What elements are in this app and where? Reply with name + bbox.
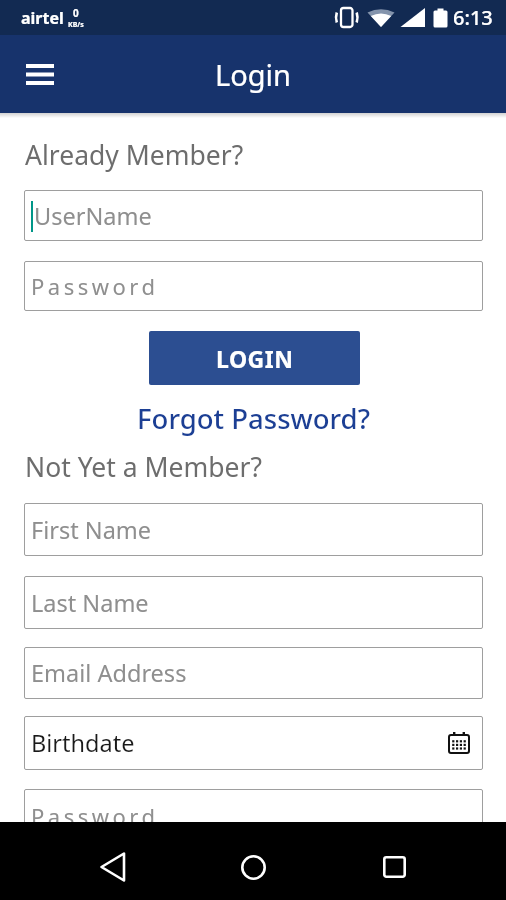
button[interactable]: Email Address xyxy=(24,647,483,699)
staticText: Password xyxy=(31,271,159,301)
staticText: Password xyxy=(31,801,159,822)
staticText: First Name xyxy=(31,514,152,546)
staticText: Not Yet a Member? xyxy=(25,449,262,485)
button[interactable] xyxy=(369,842,419,892)
button[interactable]: Birthdate xyxy=(24,716,483,770)
staticText: Last Name xyxy=(31,587,149,619)
staticText: Email Address xyxy=(31,657,187,689)
staticText: Login xyxy=(215,55,291,94)
button[interactable]: First Name xyxy=(24,503,483,556)
button[interactable]: Password xyxy=(24,789,483,822)
button[interactable] xyxy=(20,57,60,91)
staticText: KB/s xyxy=(68,20,84,30)
staticText: 6:13 xyxy=(453,4,493,31)
button[interactable]: Last Name xyxy=(24,576,483,629)
staticText: LOGIN xyxy=(216,343,294,374)
button[interactable] xyxy=(88,842,138,892)
staticText: 0 xyxy=(73,6,79,20)
staticText: UserName xyxy=(34,200,152,232)
button[interactable]: LOGIN xyxy=(149,331,360,385)
button[interactable]: Password xyxy=(24,261,483,311)
button[interactable]: UserName xyxy=(24,190,483,241)
staticText: airtel xyxy=(21,7,64,29)
staticText: Birthdate xyxy=(31,727,135,759)
staticText: Forgot Password? xyxy=(137,400,370,437)
button[interactable] xyxy=(228,842,278,892)
staticText: Already Member? xyxy=(25,137,244,173)
button[interactable]: Forgot Password? xyxy=(0,399,506,437)
